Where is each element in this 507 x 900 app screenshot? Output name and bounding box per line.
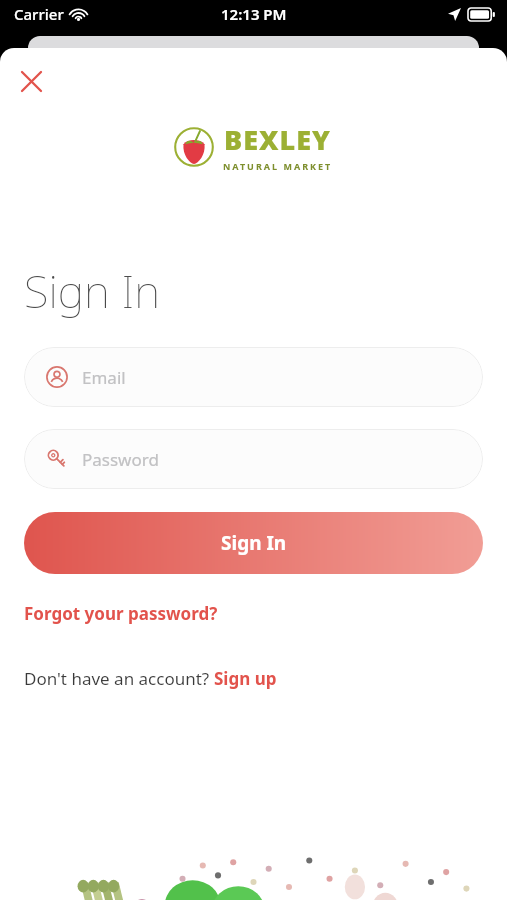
button[interactable]: Forgot your password? [24, 598, 218, 629]
staticText: BEXLEY [224, 121, 332, 158]
staticText: Sign In [221, 530, 287, 556]
staticText: Don't have an account? [24, 667, 214, 690]
staticText: Sign In [24, 260, 160, 321]
staticText: Sign up [214, 667, 277, 690]
button[interactable]: Email [24, 347, 483, 407]
staticText: Password [82, 448, 159, 471]
staticText: 12:13 PM [221, 4, 287, 24]
button[interactable]: Close [11, 61, 51, 101]
button[interactable]: Sign up [214, 667, 277, 690]
button[interactable]: Sign In [24, 512, 483, 574]
staticText: NATURAL MARKET [223, 160, 333, 172]
staticText: Email [82, 366, 126, 389]
button[interactable]: Password [24, 429, 483, 489]
staticText: Forgot your password? [24, 602, 218, 625]
staticText: Carrier [14, 4, 64, 24]
